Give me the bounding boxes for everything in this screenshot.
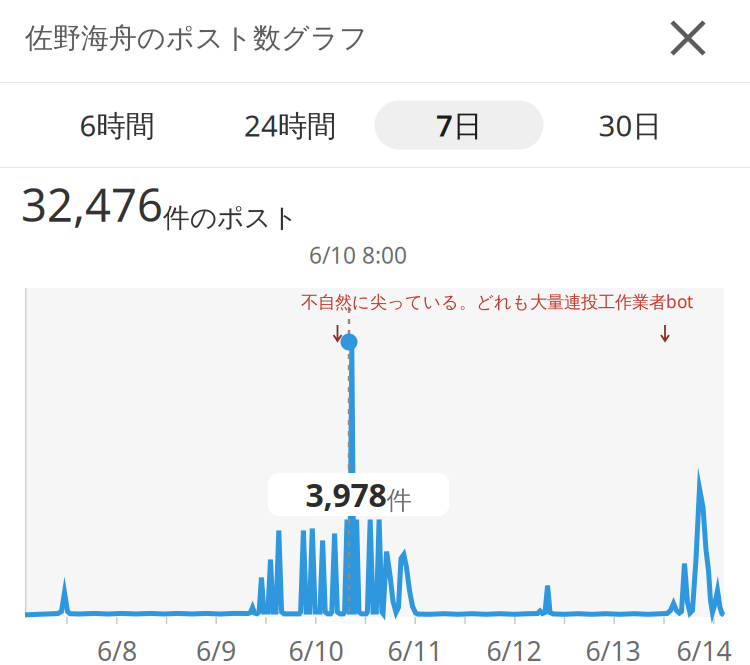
staticText: 24時間 [244, 105, 336, 144]
staticText: 件のポスト [163, 201, 298, 234]
staticText: 6/13 [585, 633, 640, 665]
button[interactable]: 閉じる [653, 0, 723, 76]
staticText: 6/9 [196, 633, 236, 665]
button[interactable]: 24時間 [204, 83, 376, 167]
button[interactable]: 6時間 [31, 83, 203, 167]
staticText: 佐野海舟のポスト数グラフ [25, 21, 368, 55]
staticText: 7日 [436, 105, 482, 144]
staticText: 6/10 8:00 [309, 240, 407, 270]
staticText: 32,476 [21, 174, 163, 234]
staticText: 件 [386, 485, 411, 516]
staticText: 6/10 [288, 633, 343, 665]
staticText: 30日 [598, 105, 661, 144]
staticText: 6/11 [387, 633, 442, 665]
button[interactable]: 30日 [544, 83, 716, 167]
button[interactable]: 7日 [373, 83, 545, 167]
staticText: 不自然に尖っている。どれも大量連投工作業者bot [301, 290, 693, 313]
staticText: 6時間 [79, 105, 154, 144]
staticText: 6/8 [97, 633, 137, 665]
staticText: 6/14 [676, 633, 731, 665]
staticText: 3,978 [305, 473, 386, 516]
staticText: 6/12 [486, 633, 541, 665]
